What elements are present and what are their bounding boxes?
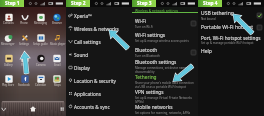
staticText: Gallery xyxy=(4,63,13,67)
staticText: Display xyxy=(74,65,90,71)
button[interactable]: Step 2 xyxy=(66,0,90,7)
button[interactable]: Gallery xyxy=(0,63,16,67)
button[interactable]: Wi-Fi xyxy=(132,16,198,30)
button[interactable]: Play xyxy=(16,63,32,67)
staticText: Wireless & networks xyxy=(74,26,119,32)
staticText: Mobile networks xyxy=(135,104,173,111)
staticText: Maps xyxy=(54,83,61,87)
staticText: Step 3 xyxy=(137,0,152,7)
button[interactable]: Port, Wi-Fi hotspot settings xyxy=(198,33,264,46)
staticText: Port, Wi-Fi hotspot settings xyxy=(201,35,261,41)
staticText: Step 2 xyxy=(71,0,86,7)
staticText: Bluetooth settings xyxy=(135,59,177,66)
button[interactable]: Wireless & networks xyxy=(66,22,132,35)
button[interactable]: Settings xyxy=(16,42,32,46)
staticText: Email xyxy=(54,63,61,67)
button[interactable]: Xperia™ xyxy=(66,9,132,22)
staticText: Turn on Wi-Fi xyxy=(135,25,153,29)
staticText: Messaging xyxy=(34,21,48,25)
button[interactable]: Browser xyxy=(49,21,66,25)
staticText: Play xyxy=(21,63,27,67)
staticText: Portable Wi-Fi hotspot xyxy=(201,24,254,31)
button[interactable]: Help xyxy=(198,46,264,57)
button[interactable]: Tethering xyxy=(132,74,198,89)
staticText: Step 4 xyxy=(203,0,218,7)
button[interactable]: Setup guide xyxy=(32,42,49,46)
button[interactable]: Play Store xyxy=(0,83,16,87)
staticText: Tethering xyxy=(135,74,157,81)
staticText: Messenger xyxy=(1,42,15,46)
staticText: Phone xyxy=(20,21,28,25)
button[interactable]: Applications xyxy=(66,87,132,100)
button[interactable]: Call settings xyxy=(66,35,132,48)
staticText: Set up & manage wireless access points xyxy=(135,39,189,43)
staticText: Calendar xyxy=(35,83,46,87)
button[interactable]: Calendar xyxy=(32,83,49,87)
staticText: Settings xyxy=(19,42,29,46)
staticText: Xperia™ xyxy=(74,13,92,19)
staticText: Wi-Fi settings xyxy=(135,32,166,39)
staticText: Set up & manage Virtual Private Networks… xyxy=(135,96,198,103)
button[interactable]: Messenger xyxy=(0,42,16,46)
button[interactable]: Facebook xyxy=(16,83,32,87)
button[interactable]: VPN settings xyxy=(132,89,198,103)
button[interactable]: Step 3 xyxy=(132,0,156,7)
button[interactable]: Portable Wi-Fi hotspot xyxy=(198,22,264,33)
button[interactable]: Sound xyxy=(66,48,132,61)
staticText: USB tethering xyxy=(201,10,234,17)
staticText: Camera xyxy=(36,63,46,67)
staticText: Turn on Bluetooth xyxy=(135,54,160,58)
staticText: Contacts xyxy=(3,21,14,25)
button[interactable]: Phone xyxy=(16,21,32,25)
staticText: Wireless & network settings xyxy=(135,8,179,12)
button[interactable]: Contacts xyxy=(0,21,16,25)
staticText: Call settings xyxy=(74,39,101,45)
button[interactable]: Accounts & sync xyxy=(66,100,132,113)
staticText: Help xyxy=(201,48,212,55)
staticText: Sound xyxy=(74,52,89,58)
button[interactable]: Step 4 xyxy=(198,0,222,7)
button[interactable]: Maps xyxy=(49,83,66,87)
staticText: Applications xyxy=(74,91,101,97)
button[interactable]: Bluetooth xyxy=(132,45,198,59)
staticText: Share your phone's mobile data connectio… xyxy=(135,81,198,89)
staticText: Play Store xyxy=(2,83,15,87)
button[interactable]: Messaging xyxy=(32,21,49,25)
button[interactable]: Email xyxy=(49,63,66,67)
staticText: VPN settings xyxy=(135,89,164,96)
staticText: Set up & manage portable Wi-Fi hotspot xyxy=(201,41,254,45)
staticText: Music player xyxy=(50,42,66,46)
staticText: Browser xyxy=(52,21,63,25)
button[interactable]: Camera xyxy=(32,63,49,67)
staticText: Setup guide xyxy=(33,42,48,46)
button[interactable]: Bluetooth settings xyxy=(132,59,198,74)
staticText: Location & security xyxy=(74,78,116,84)
button[interactable]: USB tethering xyxy=(198,9,264,22)
staticText: Accounts & sync xyxy=(74,104,110,110)
button[interactable]: Location & security xyxy=(66,74,132,87)
button[interactable]: Display xyxy=(66,61,132,74)
button[interactable]: Wi-Fi settings xyxy=(132,30,198,45)
staticText: Set options for roaming, networks, APNs xyxy=(135,111,191,115)
staticText: Bluetooth xyxy=(135,47,158,54)
staticText: Wi-Fi xyxy=(135,18,146,25)
staticText: Facebook xyxy=(18,83,30,87)
staticText: Step 1 xyxy=(5,0,20,7)
staticText: Manage connections, set device name & di… xyxy=(135,66,198,74)
button[interactable]: Step 1 xyxy=(0,0,24,7)
button[interactable]: Mobile networks xyxy=(132,103,198,116)
staticText: Not bound xyxy=(201,17,216,21)
button[interactable]: Music player xyxy=(49,42,66,46)
